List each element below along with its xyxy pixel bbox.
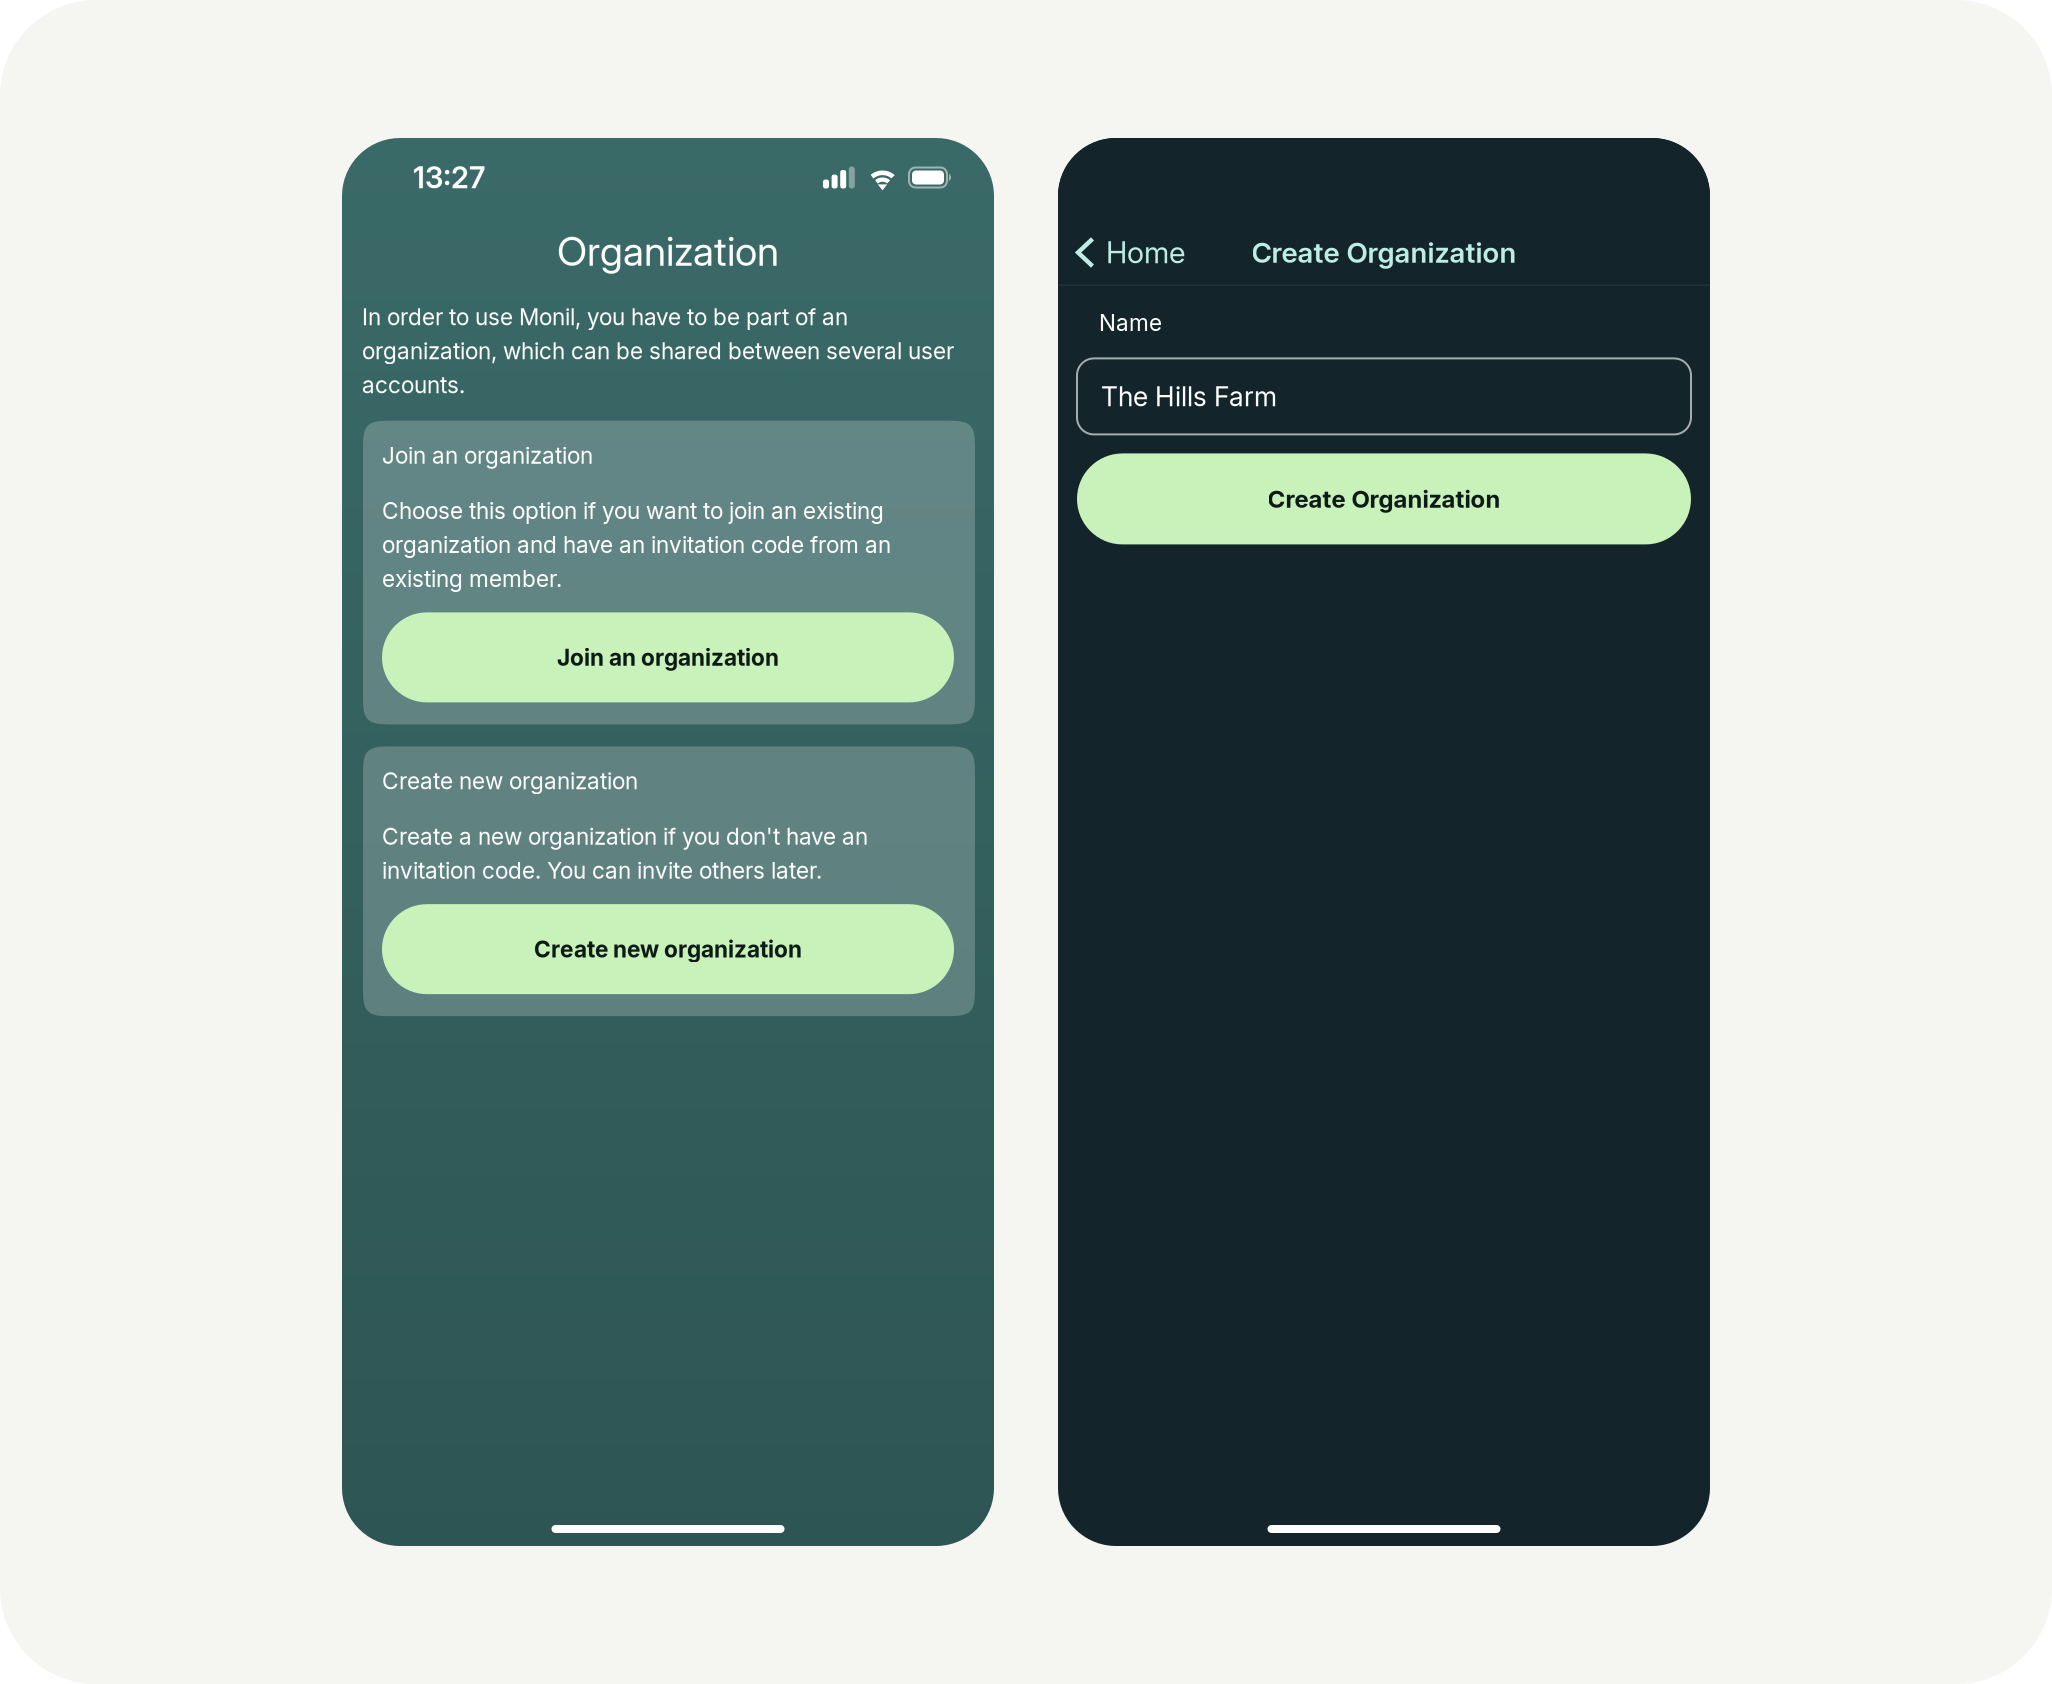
button[interactable]: Join an organization: [382, 612, 954, 702]
staticText: Create Organization: [1251, 236, 1516, 269]
staticText: In order to use Monil, you have to be pa…: [362, 303, 954, 399]
staticText: Create new organization: [382, 767, 638, 795]
staticText: Create new organization: [534, 935, 802, 963]
staticText: Organization: [557, 227, 779, 275]
staticText: Choose this option if you want to join a…: [382, 497, 891, 592]
staticText: Join an organization: [557, 644, 779, 671]
staticText: 13:27: [413, 160, 485, 195]
staticText: Create Organization: [1267, 484, 1500, 513]
staticText: The Hills Farm: [1101, 380, 1277, 413]
staticText: Create a new organization if you don't h…: [382, 823, 868, 884]
staticText: Home: [1106, 235, 1185, 270]
staticText: Name: [1099, 309, 1162, 336]
button[interactable]: Create new organization: [382, 904, 954, 994]
staticText: Join an organization: [382, 442, 593, 469]
button[interactable]: Create Organization: [1077, 453, 1691, 544]
button[interactable]: Home: [1058, 225, 1199, 280]
